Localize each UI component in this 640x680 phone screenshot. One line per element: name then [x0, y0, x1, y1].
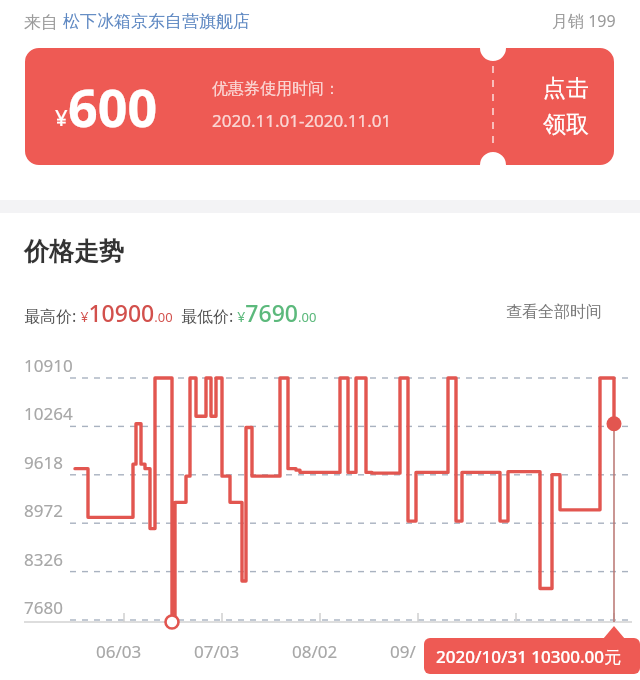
- button[interactable]: Selected price point: [424, 634, 640, 674]
- staticText: 8972: [24, 499, 63, 522]
- staticText: 06/03: [96, 640, 142, 663]
- staticText: 月销 199: [552, 10, 616, 32]
- staticText: 8326: [24, 548, 63, 571]
- staticText: 09/: [390, 640, 416, 663]
- staticText: 2020/10/31 10300.00元: [436, 645, 621, 668]
- staticText: 7680: [24, 596, 63, 619]
- staticText: 领取: [543, 110, 589, 139]
- button[interactable]: 查看全部时间: [506, 302, 602, 322]
- staticText: ¥: [55, 102, 68, 132]
- staticText: 最高价: ¥10900.00 最低价: ¥7690.00: [24, 297, 317, 328]
- button[interactable]: ¥: [25, 48, 614, 165]
- staticText: 600: [68, 71, 158, 142]
- staticText: 10264: [24, 402, 73, 425]
- staticText: 价格走势: [24, 236, 124, 267]
- staticText: 07/03: [194, 640, 240, 663]
- staticText: 10910: [24, 354, 73, 377]
- staticText: 2020.11.01-2020.11.01: [212, 109, 392, 132]
- staticText: 来自: [24, 10, 63, 33]
- staticText: 9618: [24, 451, 63, 474]
- staticText: 08/02: [292, 640, 338, 663]
- button[interactable]: 松下冰箱京东自营旗舰店: [63, 11, 250, 32]
- staticText: 点击: [543, 74, 589, 103]
- staticText: 优惠券使用时间：: [212, 79, 340, 99]
